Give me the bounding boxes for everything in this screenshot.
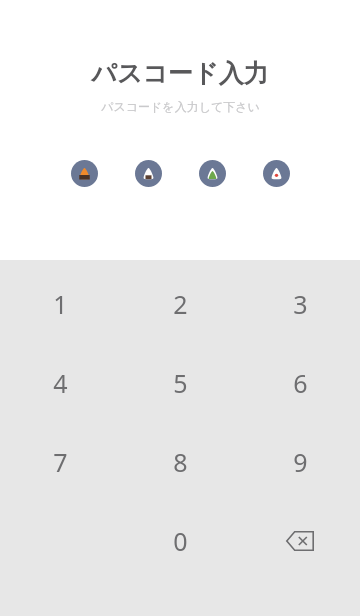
staticText: 0 (173, 524, 188, 558)
button[interactable]: 4 (0, 343, 120, 422)
staticText: 2 (173, 287, 188, 321)
button[interactable]: 2 (120, 264, 240, 343)
staticText: 4 (53, 366, 68, 400)
button[interactable]: 0 (120, 501, 240, 580)
button[interactable]: 9 (240, 422, 360, 501)
button[interactable]: 7 (0, 422, 120, 501)
staticText: 9 (293, 445, 308, 479)
button[interactable]: 1 (0, 264, 120, 343)
staticText: 7 (53, 445, 68, 479)
staticText: 6 (293, 366, 308, 400)
button[interactable]: Delete (240, 501, 360, 580)
staticText: 5 (173, 366, 188, 400)
button[interactable]: 6 (240, 343, 360, 422)
staticText: パスコードを入力して下さい (101, 99, 260, 114)
staticText: 8 (173, 445, 188, 479)
staticText: 3 (293, 287, 308, 321)
button[interactable]: 3 (240, 264, 360, 343)
staticText: 1 (53, 287, 68, 321)
staticText: パスコード入力 (91, 58, 269, 89)
button[interactable]: 5 (120, 343, 240, 422)
button[interactable]: 8 (120, 422, 240, 501)
